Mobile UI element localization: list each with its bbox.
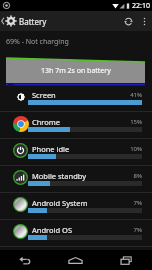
staticText: 22:10 xyxy=(132,1,150,11)
staticText: 8% xyxy=(122,172,142,180)
staticText: Android System xyxy=(32,198,88,208)
staticText: Screen xyxy=(32,90,56,100)
staticText: 41% xyxy=(122,91,142,99)
button[interactable]: Android OS xyxy=(0,220,152,247)
button[interactable]: More options xyxy=(137,11,152,31)
staticText: 69% - Not charging xyxy=(6,37,69,47)
staticText: 15% xyxy=(122,118,142,126)
staticText: Battery xyxy=(19,16,47,27)
staticText: Mobile standby xyxy=(32,171,87,181)
button[interactable]: Android System xyxy=(0,193,152,220)
button[interactable]: Mobile standby xyxy=(0,166,152,193)
button[interactable]: Chrome xyxy=(0,112,152,139)
staticText: 7% xyxy=(122,226,142,234)
staticText: 7% xyxy=(122,199,142,207)
staticText: Chrome xyxy=(32,117,61,127)
staticText: 13h 7m 2s on battery xyxy=(41,66,111,76)
staticText: 10% xyxy=(122,145,142,153)
staticText: Android OS xyxy=(32,225,72,235)
button[interactable]: Refresh xyxy=(119,11,137,31)
button[interactable]: Back xyxy=(0,250,50,270)
button[interactable]: Phone idle xyxy=(0,139,152,166)
staticText: Phone idle xyxy=(32,144,70,154)
button[interactable]: Home xyxy=(50,250,101,270)
button[interactable]: Navigate up xyxy=(0,11,53,31)
button[interactable]: Screen xyxy=(0,85,152,112)
button[interactable]: Recent apps xyxy=(101,250,152,270)
